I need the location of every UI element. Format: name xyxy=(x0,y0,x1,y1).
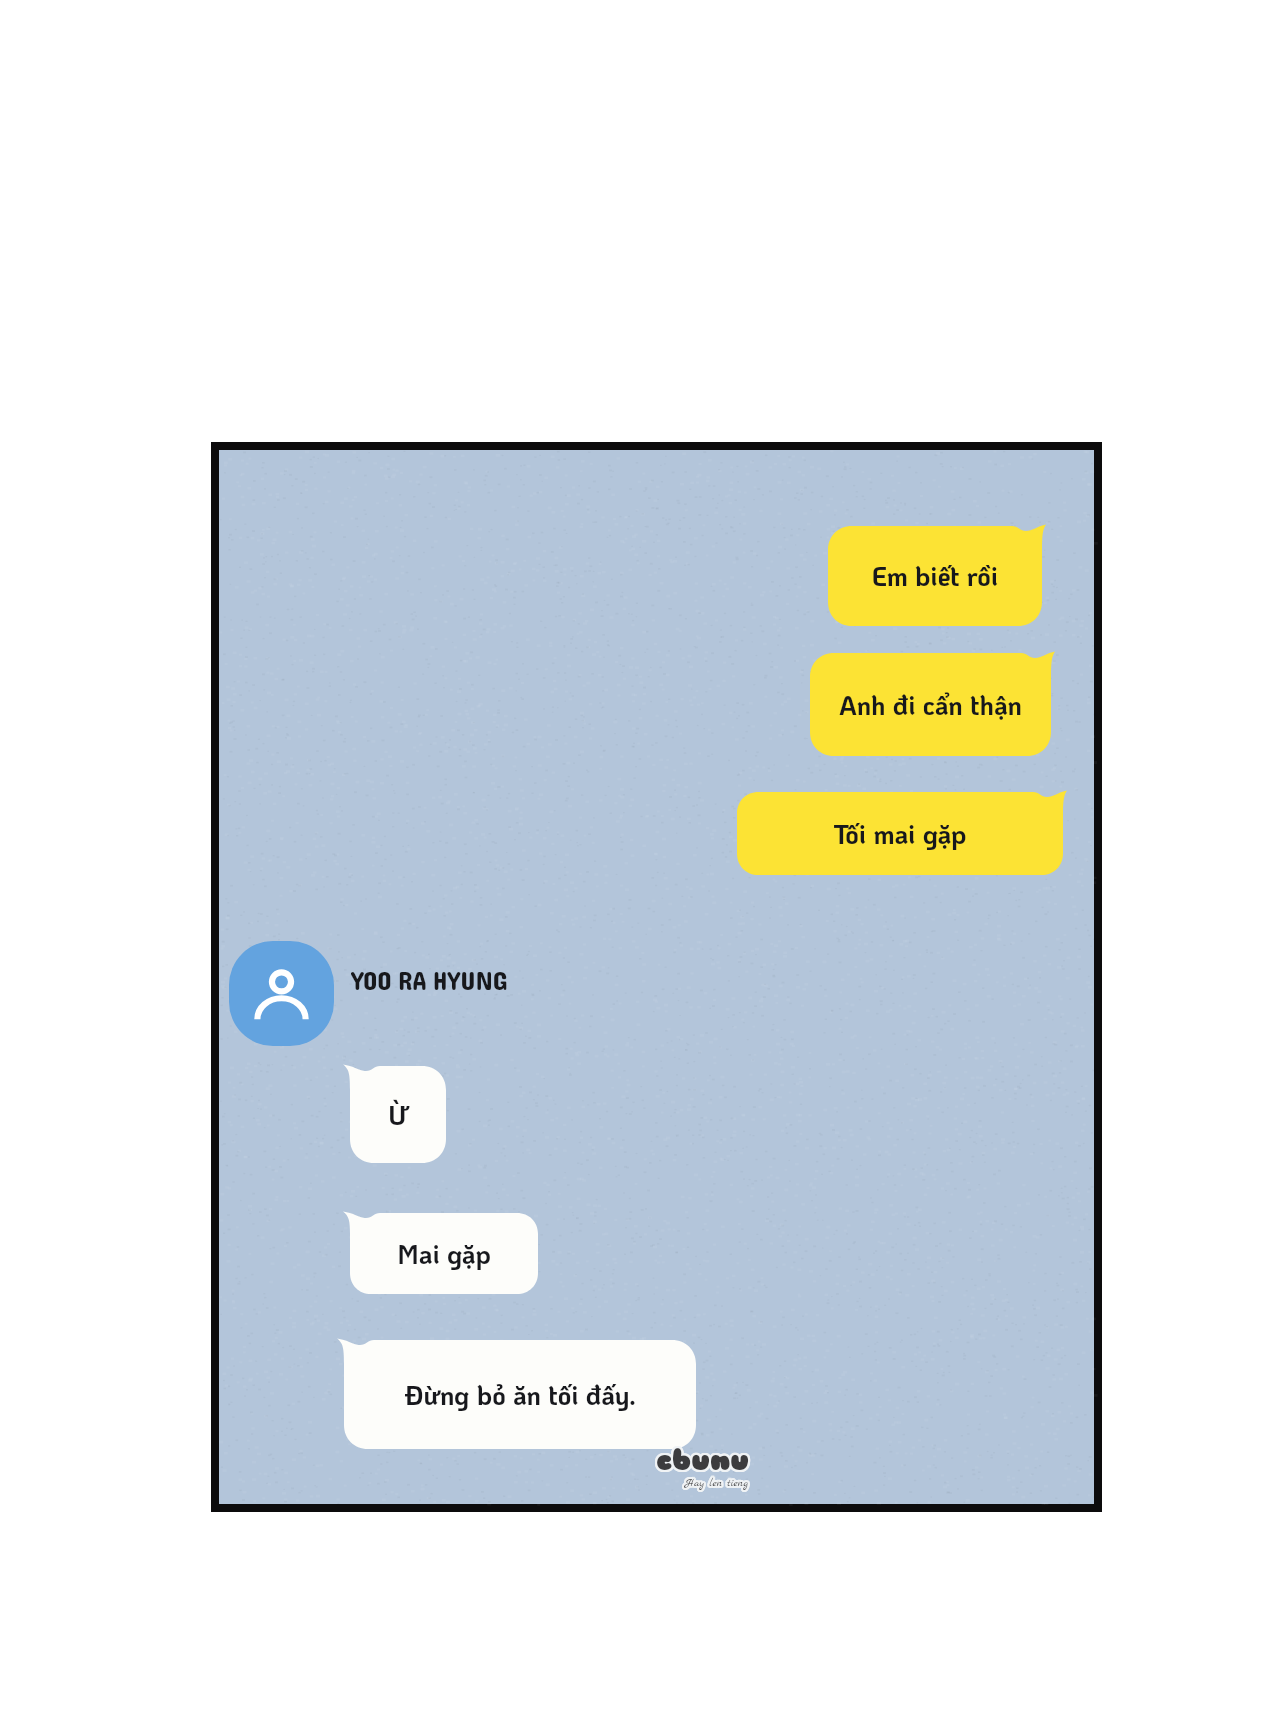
staticText: cbunu xyxy=(655,1443,749,1478)
staticText: Hay len tieng xyxy=(686,1475,749,1489)
staticText: cbunu xyxy=(654,1444,748,1479)
staticText: Hay len tieng xyxy=(684,1478,747,1492)
staticText: Đừng bỏ ăn tối đấy. xyxy=(405,1378,636,1412)
staticText: Ừ xyxy=(388,1098,409,1132)
staticText: cbunu xyxy=(655,1444,749,1479)
staticText: cbunu xyxy=(655,1441,749,1476)
staticText: Hay len tieng xyxy=(685,1476,748,1490)
staticText: Hay len tieng xyxy=(684,1476,747,1490)
staticText: cbunu xyxy=(656,1442,750,1477)
staticText: Hay len tieng xyxy=(684,1477,747,1491)
staticText: cbunu xyxy=(656,1441,750,1476)
staticText: cbunu xyxy=(655,1445,749,1480)
staticText: Hay len tieng xyxy=(686,1476,749,1490)
button[interactable]: Profile avatar xyxy=(229,941,334,1046)
staticText: Hay len tieng xyxy=(683,1477,746,1491)
staticText: Hay len tieng xyxy=(687,1475,750,1489)
button[interactable]: Tối mai gặp xyxy=(737,789,1067,875)
staticText: Tối mai gặp xyxy=(833,817,967,851)
button[interactable]: Mai gặp xyxy=(343,1210,538,1294)
staticText: Hay len tieng xyxy=(686,1478,749,1492)
staticText: cbunu xyxy=(658,1442,752,1477)
staticText: cbunu xyxy=(657,1443,751,1478)
staticText: Hay len tieng xyxy=(685,1476,748,1490)
staticText: cbunu xyxy=(654,1443,748,1478)
button[interactable]: Em biết rồi xyxy=(828,523,1046,626)
staticText: Hay len tieng xyxy=(685,1475,748,1489)
staticText: Hay len tieng xyxy=(687,1477,750,1491)
staticText: Hay len tieng xyxy=(683,1475,746,1489)
staticText: Em biết rồi xyxy=(872,559,998,593)
staticText: Hay len tieng xyxy=(685,1478,748,1492)
staticText: cbunu xyxy=(656,1444,750,1479)
staticText: cbunu xyxy=(656,1443,750,1478)
staticText: YOO RA HYUNG xyxy=(351,958,508,998)
staticText: cbunu xyxy=(657,1445,751,1480)
staticText: Anh đi cẩn thận xyxy=(839,688,1022,722)
staticText: cbunu xyxy=(657,1442,751,1477)
staticText: cbunu xyxy=(658,1443,752,1478)
staticText: cbunu xyxy=(658,1444,752,1479)
staticText: cbunu xyxy=(654,1442,748,1477)
staticText: Hay len tieng xyxy=(684,1474,747,1488)
staticText: cbunu xyxy=(657,1441,751,1476)
button[interactable]: Đừng bỏ ăn tối đấy. xyxy=(337,1337,696,1449)
staticText: Hay len tieng xyxy=(684,1475,747,1489)
button[interactable]: Ừ xyxy=(343,1063,446,1163)
staticText: Hay len tieng xyxy=(686,1477,749,1491)
staticText: Hay len tieng xyxy=(686,1474,749,1488)
staticText: cbunu xyxy=(655,1442,749,1477)
button[interactable]: Anh đi cẩn thận xyxy=(810,650,1055,756)
staticText: cbunu xyxy=(656,1445,750,1480)
staticText: Hay len tieng xyxy=(685,1477,748,1491)
button[interactable]: YOO RA HYUNG xyxy=(351,958,521,998)
staticText: Hay len tieng xyxy=(687,1476,750,1490)
staticText: cbunu xyxy=(657,1444,751,1479)
staticText: Hay len tieng xyxy=(685,1474,748,1488)
staticText: cbunu xyxy=(656,1443,750,1478)
staticText: Hay len tieng xyxy=(683,1476,746,1490)
staticText: Mai gặp xyxy=(397,1237,491,1271)
